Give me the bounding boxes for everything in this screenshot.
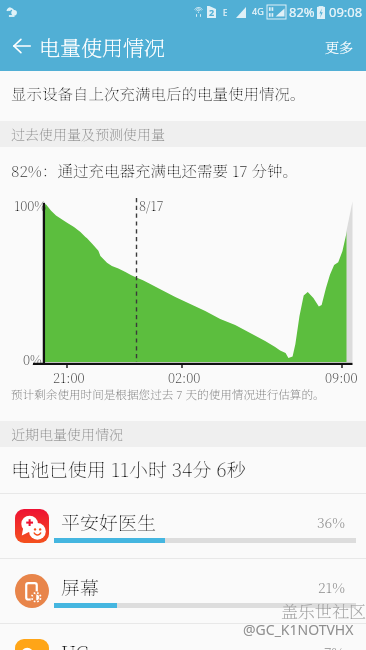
staticText: 盖乐世社区 bbox=[281, 598, 366, 622]
staticText: 预计剩余使用时间是根据您过去 7 天的使用情况进行估算的。 bbox=[11, 386, 325, 403]
staticText: 100% bbox=[14, 196, 47, 215]
staticText: @GC_K1NOTVHX bbox=[243, 620, 354, 639]
button[interactable]: 平安好医生 bbox=[0, 493, 366, 558]
staticText: 2 bbox=[209, 6, 215, 18]
staticText: 电池已使用 11小时 34分 6秒 bbox=[11, 455, 246, 482]
staticText: 屏幕 bbox=[61, 573, 100, 600]
button[interactable]: 更多 bbox=[312, 25, 366, 69]
staticText: 7% bbox=[324, 642, 345, 650]
staticText: UC bbox=[61, 638, 89, 650]
button[interactable]: Back bbox=[0, 24, 44, 68]
staticText: 0% bbox=[23, 350, 42, 369]
staticText: 82%：通过充电器充满电还需要 17 分钟。 bbox=[11, 159, 299, 181]
staticText: 36% bbox=[317, 512, 345, 532]
staticText: 显示设备自上次充满电后的电量使用情况。 bbox=[11, 82, 306, 104]
staticText: 09:00 bbox=[325, 368, 358, 387]
staticText: 更多 bbox=[325, 37, 353, 57]
staticText: 平安好医生 bbox=[61, 508, 157, 535]
staticText: 过去使用量及预测使用量 bbox=[11, 124, 165, 144]
staticText: 02:00 bbox=[168, 368, 201, 387]
button[interactable]: UC bbox=[0, 623, 366, 650]
button[interactable]: 屏幕 bbox=[0, 558, 366, 623]
staticText: 82% bbox=[289, 3, 315, 21]
staticText: 21% bbox=[318, 577, 345, 597]
staticText: 电量使用情况 bbox=[39, 32, 165, 62]
staticText: 21:00 bbox=[53, 368, 85, 387]
staticText: 8/17 bbox=[139, 196, 164, 215]
staticText: 09:08 bbox=[329, 3, 363, 21]
staticText: 4G bbox=[252, 5, 264, 17]
staticText: 近期电量使用情况 bbox=[11, 424, 123, 444]
staticText: E bbox=[223, 7, 228, 18]
